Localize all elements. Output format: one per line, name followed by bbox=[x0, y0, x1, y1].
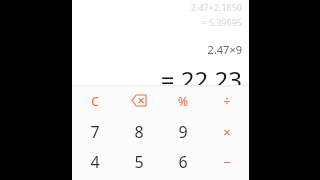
button[interactable]: 9 bbox=[161, 116, 205, 147]
staticText: = 22.23 bbox=[160, 63, 242, 85]
staticText: 7 bbox=[90, 121, 100, 143]
staticText: 2.47×9 bbox=[207, 42, 242, 57]
staticText: 9 bbox=[178, 121, 188, 143]
button[interactable]: × bbox=[205, 116, 249, 147]
button[interactable]: % bbox=[161, 85, 205, 116]
staticText: 6 bbox=[178, 151, 188, 173]
staticText: × bbox=[223, 123, 231, 141]
button[interactable]: 5 bbox=[117, 147, 161, 177]
button[interactable]: Backspace bbox=[117, 85, 161, 116]
staticText: % bbox=[178, 93, 188, 109]
staticText: 4 bbox=[90, 151, 100, 173]
staticText: − bbox=[223, 153, 231, 171]
button[interactable]: 8 bbox=[117, 116, 161, 147]
staticText: 2.47×2.1850 bbox=[190, 1, 242, 13]
button[interactable]: ÷ bbox=[205, 85, 249, 116]
staticText: 8 bbox=[134, 121, 144, 143]
button[interactable]: 7 bbox=[72, 116, 117, 147]
staticText: 5 bbox=[134, 151, 144, 173]
staticText: C bbox=[91, 93, 99, 109]
button[interactable]: 6 bbox=[161, 147, 205, 177]
button[interactable]: 4 bbox=[72, 147, 117, 177]
button[interactable]: − bbox=[205, 147, 249, 177]
button[interactable]: C bbox=[72, 85, 117, 116]
staticText: ÷ bbox=[223, 92, 231, 110]
staticText: = 5.39695 bbox=[201, 16, 242, 28]
